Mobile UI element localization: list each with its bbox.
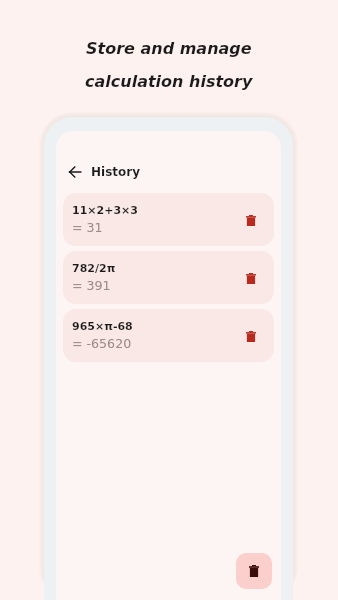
staticText: calculation history xyxy=(85,72,253,91)
button[interactable]: Delete entry xyxy=(241,326,261,346)
staticText: Store and manage xyxy=(86,39,252,58)
staticText: 782/2π xyxy=(72,262,116,275)
staticText: = 31 xyxy=(72,220,103,235)
staticText: 965×π-68 xyxy=(72,320,133,333)
staticText: = 391 xyxy=(72,278,111,293)
button[interactable]: Clear all history xyxy=(236,553,272,589)
staticText: History xyxy=(91,165,141,179)
button[interactable]: 782/2π xyxy=(63,251,274,304)
button[interactable]: Delete entry xyxy=(241,268,261,288)
button[interactable]: Delete entry xyxy=(241,210,261,230)
staticText: = -65620 xyxy=(72,336,132,351)
button[interactable]: 11×2+3×3 xyxy=(63,193,274,246)
staticText: 11×2+3×3 xyxy=(72,204,138,217)
button[interactable]: Back xyxy=(63,160,87,184)
button[interactable]: 965×π-68 xyxy=(63,309,274,362)
